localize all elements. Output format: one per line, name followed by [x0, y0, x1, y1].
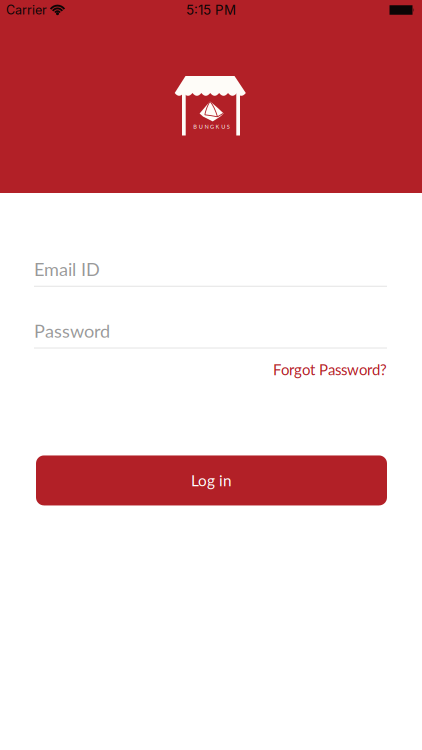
- staticText: Forgot Password?: [273, 360, 387, 378]
- staticText: Email ID: [34, 258, 100, 280]
- staticText: 5:15 PM: [186, 2, 236, 18]
- button[interactable]: Email ID: [34, 258, 387, 287]
- staticText: Carrier: [6, 2, 47, 18]
- staticText: Log in: [191, 471, 232, 490]
- staticText: Password: [34, 320, 110, 342]
- button[interactable]: Log in: [36, 455, 387, 505]
- button[interactable]: Forgot Password?: [273, 360, 387, 378]
- button[interactable]: Password: [34, 320, 387, 349]
- staticText: BUNGKUS: [193, 123, 230, 130]
